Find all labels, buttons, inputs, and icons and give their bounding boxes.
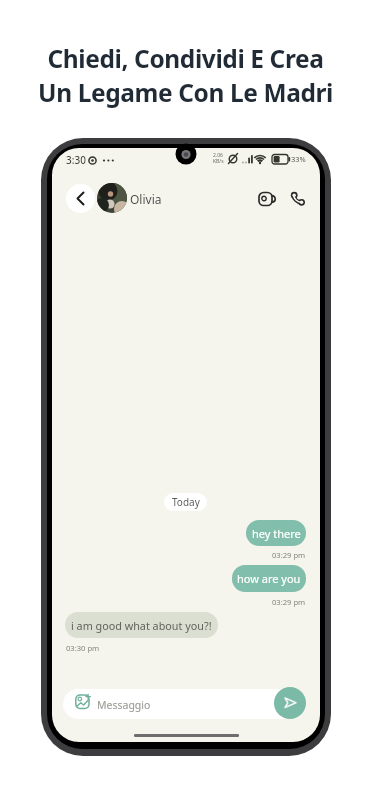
staticText: i am good what about you?! — [71, 618, 212, 633]
staticText: KB/s — [213, 158, 224, 165]
button[interactable] — [97, 183, 127, 213]
staticText: Un Legame Con Le Madri — [38, 76, 333, 108]
button[interactable] — [288, 188, 308, 210]
staticText: 03:29 pm — [272, 597, 306, 607]
staticText: 2.06 — [213, 152, 223, 159]
button[interactable]: hey there — [246, 520, 306, 546]
staticText: how are you — [237, 571, 301, 586]
staticText: 3:30 — [66, 153, 86, 167]
staticText: 33% — [291, 154, 306, 164]
staticText: Chiedi, Condividi E Crea — [47, 42, 324, 74]
button[interactable] — [256, 190, 278, 208]
staticText: Olivia — [130, 191, 162, 207]
button[interactable] — [274, 687, 306, 719]
button[interactable]: how are you — [232, 565, 306, 592]
staticText: Today — [172, 495, 200, 509]
staticText: 03:29 pm — [272, 550, 306, 560]
button[interactable] — [66, 184, 95, 213]
button[interactable]: i am good what about you?! — [65, 612, 218, 638]
staticText: 03:30 pm — [66, 643, 100, 653]
button[interactable] — [63, 689, 306, 719]
staticText: hey there — [252, 526, 301, 541]
staticText: Messaggio — [97, 698, 151, 712]
